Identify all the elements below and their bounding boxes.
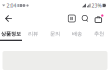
button[interactable]: Shopping bag: [92, 11, 105, 26]
button[interactable]: 추천: [88, 26, 110, 41]
staticText: 상품정보: [1, 31, 21, 37]
button[interactable]: Back: [1, 11, 16, 26]
button[interactable]: 리뷰: [22, 26, 44, 41]
button[interactable]: Scan barcode: [65, 11, 78, 26]
button[interactable]: 문의: [44, 26, 66, 41]
staticText: 문의: [50, 31, 60, 37]
button[interactable]: 배송: [66, 26, 88, 41]
staticText: 2:04: [6, 2, 16, 9]
button[interactable]: 상품정보: [0, 26, 22, 41]
staticText: 리뷰: [28, 31, 38, 37]
staticText: 23%: [92, 2, 102, 9]
button[interactable]: Search: [78, 11, 92, 26]
staticText: 추천: [94, 31, 104, 37]
staticText: 배송: [72, 31, 82, 37]
